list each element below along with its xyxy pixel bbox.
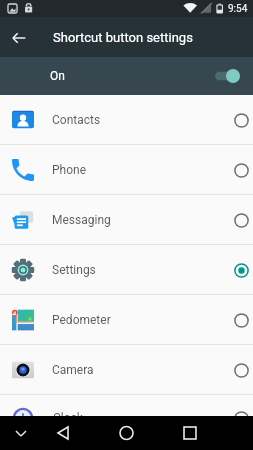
button[interactable]: Contacts bbox=[0, 95, 253, 144]
staticText: Camera bbox=[52, 363, 94, 377]
staticText: Settings bbox=[52, 263, 96, 277]
button[interactable]: Select Phone bbox=[226, 155, 253, 185]
staticText: On bbox=[50, 69, 65, 83]
button[interactable]: Camera bbox=[0, 345, 253, 394]
button[interactable]: Select Camera bbox=[226, 355, 253, 385]
button[interactable]: Clock bbox=[0, 395, 253, 416]
button[interactable]: Select Contacts bbox=[226, 105, 253, 135]
button[interactable]: Back bbox=[0, 19, 37, 56]
staticText: Phone bbox=[52, 163, 87, 177]
button[interactable]: Messaging bbox=[0, 195, 253, 244]
staticText: Pedometer bbox=[52, 313, 111, 327]
button[interactable]: Phone bbox=[0, 145, 253, 194]
button[interactable]: On bbox=[0, 57, 253, 95]
staticText: Clock bbox=[53, 411, 83, 416]
button[interactable]: Pedometer bbox=[0, 295, 253, 344]
staticText: Shortcut button settings bbox=[53, 30, 193, 45]
button[interactable]: Select Settings bbox=[226, 255, 253, 285]
staticText: 9:54 bbox=[228, 3, 248, 15]
button[interactable]: Select Pedometer bbox=[226, 305, 253, 335]
button[interactable]: Select Messaging bbox=[226, 205, 253, 235]
button[interactable]: Settings bbox=[0, 245, 253, 294]
staticText: Contacts bbox=[52, 113, 101, 127]
staticText: Messaging bbox=[52, 213, 111, 227]
